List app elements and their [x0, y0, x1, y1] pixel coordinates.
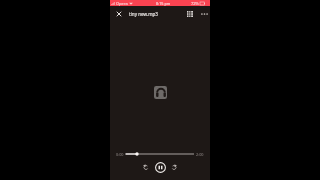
button[interactable]: Playlist: [184, 8, 196, 20]
staticText: Opera: [116, 1, 128, 6]
staticText: 72%: [191, 1, 199, 6]
staticText: tiny new.mp3: [129, 11, 158, 17]
button[interactable]: Forward 30 seconds: [167, 160, 181, 174]
staticText: 8:15 pm: [156, 1, 171, 6]
button[interactable]: More options: [198, 8, 210, 20]
staticText: 2:00: [196, 152, 204, 157]
button[interactable]: Pause: [153, 160, 167, 174]
staticText: 0:00: [116, 152, 124, 157]
button[interactable]: Rewind 10 seconds: [139, 160, 153, 174]
button[interactable]: Close: [113, 8, 125, 20]
